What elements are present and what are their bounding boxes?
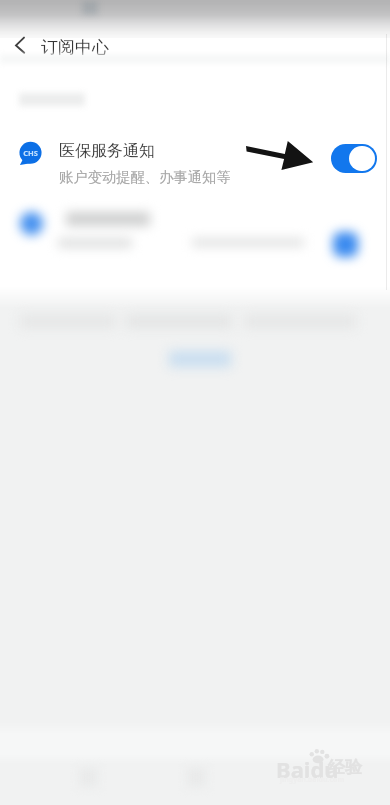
staticText: Baidu [276, 754, 339, 784]
staticText: 订阅中心 [41, 37, 109, 58]
button[interactable]: CHS [0, 128, 390, 186]
button[interactable]: Back [4, 29, 36, 61]
button[interactable]: Toggle notification [331, 144, 377, 173]
staticText: CHS [23, 148, 38, 158]
other: Pointer arrow [244, 138, 320, 174]
staticText: 账户变动提醒、办事通知等 [59, 168, 231, 186]
staticText: jingyan.baidu.com [280, 775, 345, 785]
staticText: 医保服务通知 [59, 141, 155, 161]
button[interactable] [0, 194, 390, 274]
staticText: 经验 [328, 757, 362, 778]
